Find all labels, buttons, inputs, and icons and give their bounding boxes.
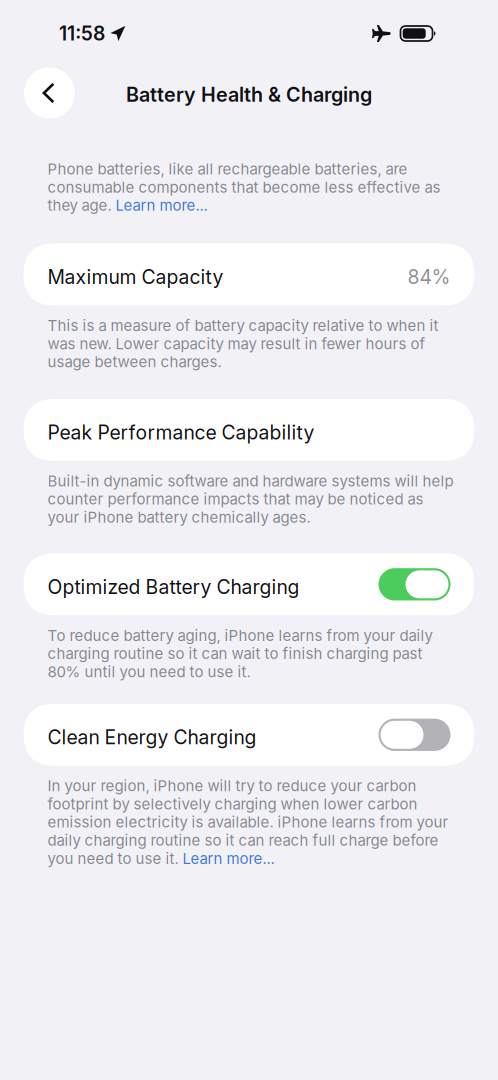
staticText: counter performance impacts that may be … [47, 490, 423, 508]
staticText: Clean Energy Charging [47, 726, 256, 749]
staticText: Maximum Capacity [47, 265, 223, 289]
staticText: footprint by selectively charging when l… [47, 795, 417, 813]
staticText: Battery Health & Charging [126, 83, 372, 106]
staticText: In your region, iPhone will try to reduc… [47, 777, 416, 795]
button[interactable]: Optimized Battery Charging [23, 553, 474, 615]
staticText: daily charging routine so it can reach f… [47, 831, 438, 849]
staticText: usage between charges. [47, 353, 221, 371]
staticText: they age. [47, 196, 115, 214]
staticText: 84% [407, 265, 450, 289]
staticText: was new. Lower capacity may result in fe… [47, 335, 425, 353]
staticText: 11:58 [59, 22, 105, 45]
staticText: To reduce battery aging, iPhone learns f… [47, 626, 432, 644]
button[interactable]: Back [24, 67, 75, 118]
staticText: Built-in dynamic software and hardware s… [47, 472, 453, 490]
button[interactable]: Clean Energy Charging [23, 704, 474, 766]
staticText: Learn more... [182, 849, 274, 867]
staticText: you need to use it. [47, 849, 182, 867]
button[interactable]: Peak Performance Capability [23, 399, 474, 461]
staticText: charging routine so it can wait to finis… [47, 644, 422, 663]
staticText: emission electricity is available. iPhon… [47, 813, 448, 831]
staticText: your iPhone battery chemically ages. [47, 508, 310, 526]
staticText: Phone batteries, like all rechargeable b… [47, 160, 407, 178]
staticText: Learn more... [115, 196, 207, 214]
staticText: Optimized Battery Charging [47, 575, 299, 598]
staticText: 80% until you need to use it. [47, 663, 250, 681]
staticText: Peak Performance Capability [47, 421, 314, 444]
staticText: This is a measure of battery capacity re… [47, 316, 438, 334]
staticText: consumable components that become less e… [47, 178, 440, 196]
